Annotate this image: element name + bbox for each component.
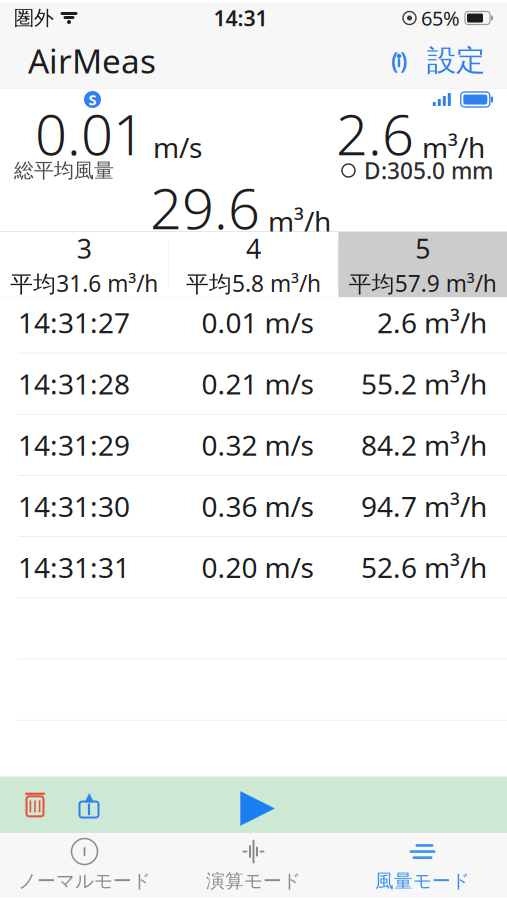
staticText: 29.6 xyxy=(150,170,260,245)
button[interactable]: ノーマルモード xyxy=(0,833,169,897)
button[interactable]: 測定開始 xyxy=(222,776,292,832)
staticText: AirMeas xyxy=(28,38,156,83)
staticText: ▲ xyxy=(84,790,93,803)
staticText: 65% xyxy=(421,5,460,31)
staticText: 4 xyxy=(246,231,261,266)
staticText: 5 xyxy=(415,231,430,266)
staticText: 平均31.6 m³/h xyxy=(10,268,158,298)
button[interactable]: 削除 xyxy=(8,776,62,832)
staticText: 0.32 m/s xyxy=(201,426,313,463)
staticText: 総平均風量 xyxy=(14,158,114,183)
staticText: S xyxy=(88,90,96,109)
staticText: ノーマルモード xyxy=(18,869,151,892)
staticText: 平均57.9 m³/h xyxy=(349,268,497,298)
button[interactable]: 共有 xyxy=(62,776,116,832)
staticText: ( xyxy=(391,45,398,75)
button[interactable]: 設定 xyxy=(421,40,491,80)
staticText: 14:31:31 xyxy=(18,549,130,586)
button[interactable]: 3 xyxy=(0,232,169,297)
staticText: 55.2 m³/h xyxy=(361,365,487,402)
staticText: D:305.0 mm xyxy=(364,155,493,185)
staticText: m³/h xyxy=(422,128,485,166)
staticText: 平均5.8 m³/h xyxy=(186,268,321,298)
button[interactable]: 14:31:31 xyxy=(0,537,507,598)
staticText: 2.6 m³/h xyxy=(377,304,487,341)
staticText: 94.7 m³/h xyxy=(361,487,487,525)
button[interactable]: 14:31:29 xyxy=(0,415,507,476)
staticText: 演算モード xyxy=(206,869,301,892)
staticText: 圏外 xyxy=(14,6,54,30)
staticText: 風量モード xyxy=(375,869,470,892)
staticText: 14:31:27 xyxy=(18,304,130,341)
button[interactable]: 演算モード xyxy=(169,833,338,897)
staticText: 3 xyxy=(77,231,92,266)
staticText: 0.01 m/s xyxy=(201,304,313,341)
button[interactable]: 14:31:28 xyxy=(0,353,507,415)
staticText: 0.36 m/s xyxy=(201,487,313,525)
staticText: 52.6 m³/h xyxy=(361,549,487,586)
staticText: m/s xyxy=(153,128,202,166)
staticText: 14:31:30 xyxy=(18,487,130,525)
button[interactable]: 14:31:27 xyxy=(0,292,507,353)
button[interactable]: 14:31:30 xyxy=(0,476,507,537)
staticText: m³/h xyxy=(268,202,331,240)
staticText: 14:31 xyxy=(213,4,267,32)
staticText: 0.01 xyxy=(35,96,145,171)
staticText: 設定 xyxy=(427,42,485,78)
staticText: 14:31:28 xyxy=(18,365,130,402)
button[interactable]: 5 xyxy=(338,232,507,297)
button[interactable]: 接続 xyxy=(377,40,421,80)
staticText: ▶ xyxy=(240,779,275,830)
staticText: 0.21 m/s xyxy=(201,365,313,402)
staticText: 2.6 xyxy=(336,96,414,171)
staticText: ) xyxy=(400,45,407,75)
button[interactable]: 4 xyxy=(169,232,338,297)
button[interactable]: 風量モード xyxy=(338,833,507,897)
staticText: 0.20 m/s xyxy=(201,549,313,586)
staticText: 14:31:29 xyxy=(18,426,130,463)
staticText: 84.2 m³/h xyxy=(361,426,487,463)
